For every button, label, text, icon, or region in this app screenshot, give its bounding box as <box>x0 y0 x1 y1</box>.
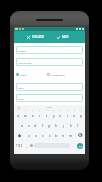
button[interactable]: c <box>39 130 46 140</box>
staticText: ?123 <box>16 144 23 148</box>
staticText: a <box>21 123 23 128</box>
button[interactable]: 5 <box>43 109 50 120</box>
button[interactable]: h <box>53 120 60 130</box>
staticText: f <box>42 123 44 128</box>
staticText: e <box>32 113 34 118</box>
staticText: p <box>80 113 83 118</box>
button[interactable]: d <box>32 120 39 130</box>
button[interactable]: Subject <box>16 46 83 54</box>
staticText: o <box>73 113 76 118</box>
staticText: m <box>69 133 73 138</box>
button[interactable]: s <box>25 120 32 130</box>
staticText: SAVE <box>62 35 69 39</box>
staticText: n <box>62 133 65 138</box>
button[interactable]: 9 <box>71 109 78 120</box>
staticText: Assignment <box>51 73 65 76</box>
staticText: x <box>35 133 37 138</box>
staticText: 1 <box>17 109 19 112</box>
button[interactable]: 7 <box>57 109 64 120</box>
button[interactable]: 8 <box>64 109 71 120</box>
button[interactable]: 2 <box>22 109 29 120</box>
button[interactable]: x <box>32 130 39 140</box>
staticText: 7 <box>60 109 62 112</box>
staticText: r <box>39 113 41 118</box>
button[interactable]: SAVE <box>56 31 70 43</box>
staticText: Exam <box>20 73 27 76</box>
button[interactable]: Voice input <box>29 140 34 151</box>
staticText: Name/Topic <box>18 61 33 64</box>
button[interactable]: v <box>46 130 53 140</box>
button[interactable]: ?123 <box>14 140 24 151</box>
staticText: y <box>53 113 55 118</box>
staticText: 2 <box>25 109 27 112</box>
button[interactable]: , <box>24 140 29 151</box>
staticText: 5 <box>46 109 48 112</box>
button[interactable]: 4 <box>36 109 43 120</box>
button[interactable] <box>34 140 70 151</box>
button[interactable]: Assignment <box>47 72 65 77</box>
staticText: w <box>24 113 27 118</box>
button[interactable]: 6 <box>50 109 57 120</box>
button[interactable]: Exam <box>16 72 27 77</box>
button[interactable]: m <box>67 130 74 140</box>
button[interactable]: 3 <box>29 109 36 120</box>
staticText: Subject <box>18 49 27 52</box>
staticText: g <box>48 123 51 128</box>
button[interactable]: g <box>46 120 53 130</box>
staticText: u <box>59 113 62 118</box>
staticText: s <box>28 123 30 128</box>
staticText: t <box>46 113 48 118</box>
staticText: 8 <box>67 109 69 112</box>
staticText: v <box>49 133 51 138</box>
staticText: Date <box>18 86 24 89</box>
button[interactable]: Date <box>16 83 83 91</box>
staticText: 9 <box>74 109 76 112</box>
button[interactable]: Backspace <box>74 130 85 140</box>
staticText: DISCARD <box>32 35 44 39</box>
button[interactable]: l <box>74 120 81 130</box>
button[interactable]: Emoji <box>17 106 20 109</box>
button[interactable]: More options <box>79 106 82 109</box>
button[interactable]: . <box>70 140 75 151</box>
button[interactable]: Name/Topic <box>16 58 83 66</box>
staticText: time <box>47 106 52 109</box>
button[interactable]: Enter <box>75 140 85 151</box>
staticText: k <box>70 123 72 128</box>
staticText: 6 <box>53 109 55 112</box>
button[interactable]: a <box>18 120 25 130</box>
staticText: 4 <box>39 109 41 112</box>
staticText: l <box>77 123 78 128</box>
button[interactable]: z <box>25 130 32 140</box>
button[interactable]: b <box>53 130 60 140</box>
staticText: , <box>26 143 27 148</box>
button[interactable]: f <box>39 120 46 130</box>
staticText: z <box>28 133 30 138</box>
staticText: j <box>63 123 64 128</box>
button[interactable]: k <box>67 120 74 130</box>
staticText: c <box>42 133 44 138</box>
staticText: . <box>72 143 73 148</box>
button[interactable]: Shift <box>14 130 25 140</box>
button[interactable]: 0 <box>78 109 85 120</box>
button[interactable]: DISCARD <box>26 31 45 43</box>
button[interactable]: j <box>60 120 67 130</box>
staticText: 0 <box>81 109 83 112</box>
staticText: i <box>67 113 68 118</box>
button[interactable]: 1 <box>14 109 22 120</box>
staticText: q <box>17 113 20 118</box>
staticText: 3 <box>32 109 34 112</box>
staticText: Time <box>18 97 24 100</box>
button[interactable]: Time <box>16 94 83 102</box>
button[interactable]: n <box>60 130 67 140</box>
staticText: d <box>34 123 37 128</box>
staticText: b <box>55 133 58 138</box>
staticText: h <box>55 123 58 128</box>
